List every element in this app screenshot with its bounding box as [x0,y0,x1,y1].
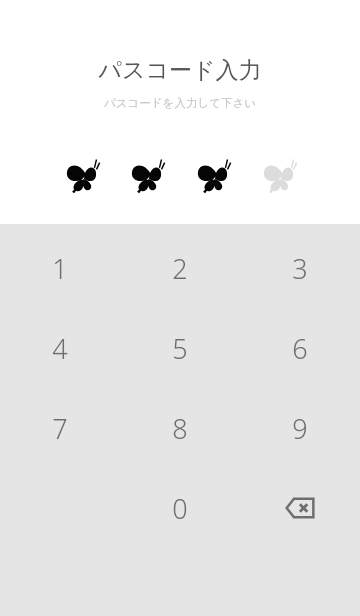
staticText: 8 [172,410,188,447]
staticText: 5 [172,330,188,367]
staticText: 3 [292,250,308,287]
button[interactable]: 3 [240,228,360,308]
button[interactable]: 0 [120,468,240,548]
button[interactable]: 1 [0,228,120,308]
staticText: 7 [52,410,68,447]
staticText: 1 [52,250,68,287]
staticText: 6 [292,330,308,367]
button[interactable]: 6 [240,308,360,388]
button[interactable]: 5 [120,308,240,388]
button[interactable]: 2 [120,228,240,308]
button[interactable]: Delete [240,468,360,548]
staticText: パスコード入力 [0,56,360,85]
staticText: 4 [52,330,68,367]
staticText: パスコードを入力して下さい [0,96,360,110]
button[interactable]: 9 [240,388,360,468]
button[interactable]: 8 [120,388,240,468]
button[interactable]: 7 [0,388,120,468]
button[interactable]: 4 [0,308,120,388]
staticText: 0 [172,490,188,527]
staticText: 9 [292,410,308,447]
staticText: 2 [172,250,188,287]
